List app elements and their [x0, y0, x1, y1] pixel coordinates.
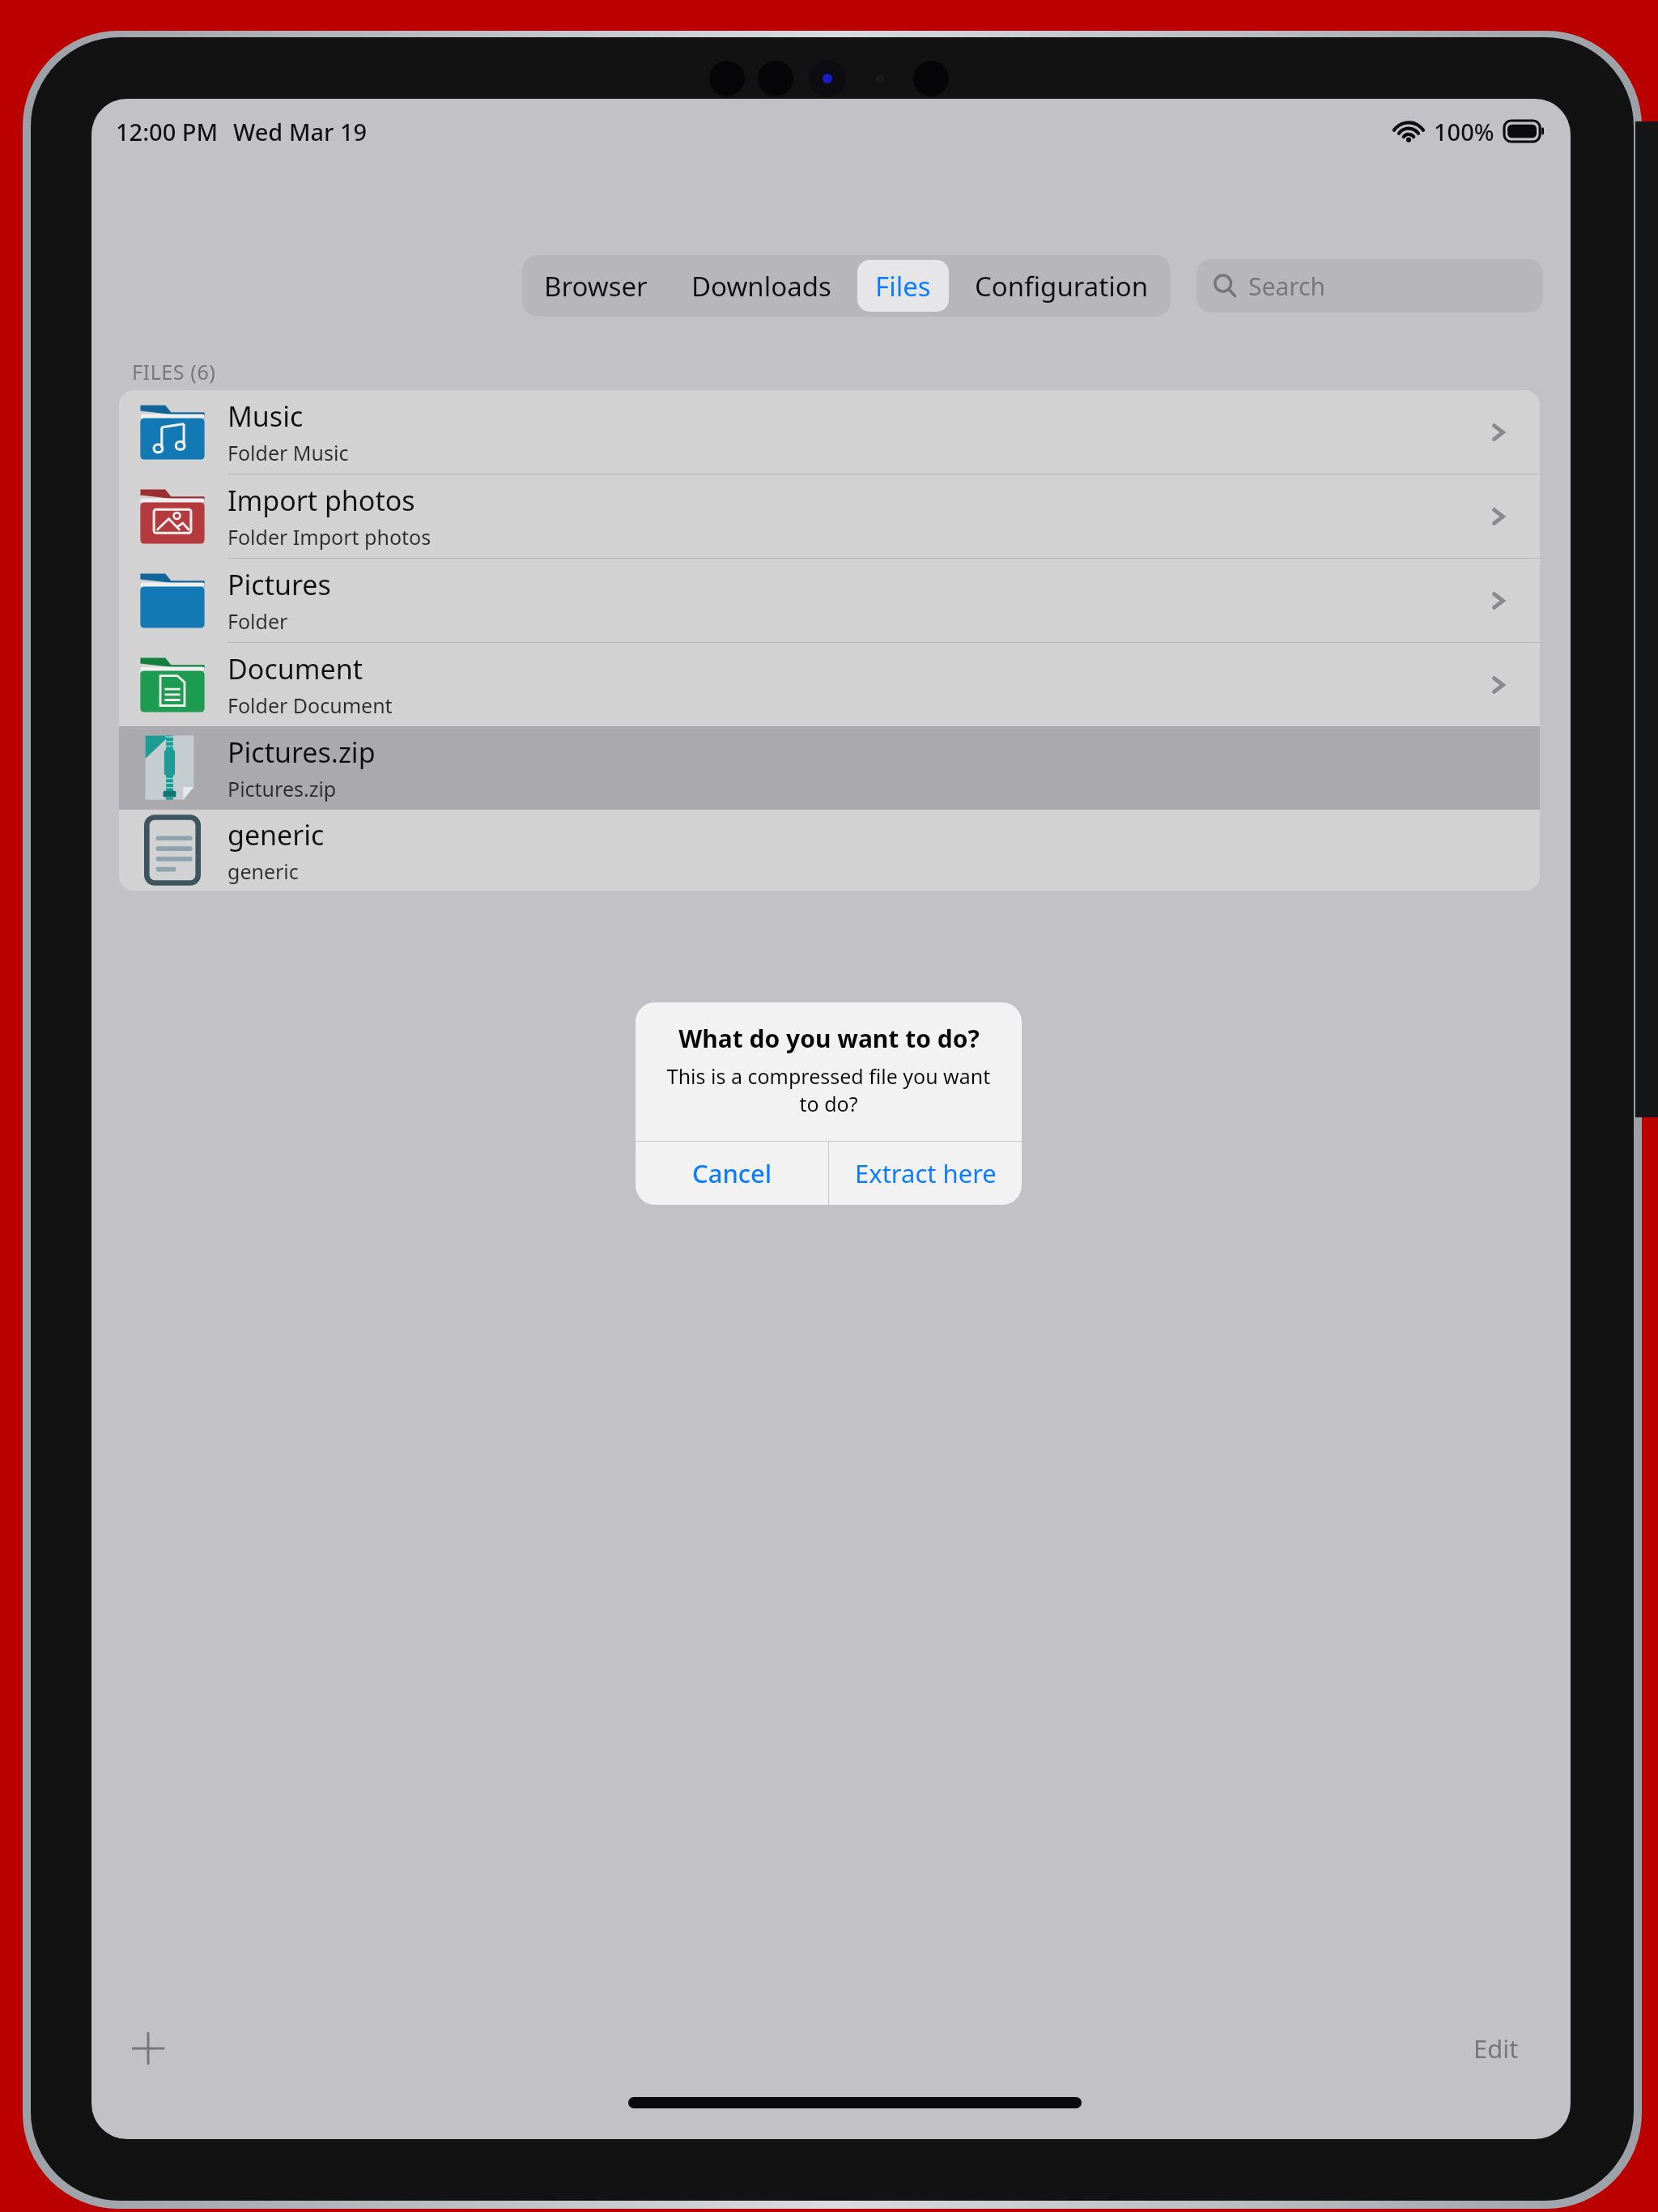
button[interactable]: Music	[119, 390, 1540, 474]
staticText: Files	[875, 268, 931, 304]
staticText: Folder	[227, 607, 288, 635]
button[interactable]: Pictures	[119, 559, 1540, 642]
staticText: This is a compressed file you want to do…	[657, 1062, 1001, 1117]
staticText: Pictures	[227, 566, 331, 603]
button[interactable]: Pictures.zip	[119, 726, 1540, 810]
staticText: Edit	[1473, 2031, 1519, 2065]
staticText: generic	[227, 857, 299, 885]
button[interactable]: Extract here	[829, 1142, 1022, 1205]
button[interactable]: Edit	[1443, 2008, 1549, 2089]
staticText: Pictures.zip	[227, 775, 337, 802]
button[interactable]: Document	[119, 643, 1540, 726]
staticText: Pictures.zip	[227, 734, 376, 771]
staticText: Music	[227, 398, 304, 435]
button[interactable]: Browser	[526, 260, 665, 312]
button[interactable]: Downloads	[674, 260, 849, 312]
staticText: Browser	[544, 268, 648, 304]
staticText: Folder Music	[227, 439, 349, 466]
staticText: Import photos	[227, 482, 415, 519]
staticText: Folder Import photos	[227, 523, 432, 551]
staticText: What do you want to do?	[678, 1022, 980, 1055]
staticText: Extract here	[855, 1156, 997, 1190]
button[interactable]: generic	[119, 810, 1540, 891]
button[interactable]: Configuration	[957, 260, 1167, 312]
button[interactable]: Search	[1197, 259, 1543, 313]
staticText: 12:00 PM	[116, 116, 219, 147]
staticText: Document	[227, 650, 363, 687]
button[interactable]: Cancel	[636, 1142, 828, 1205]
button[interactable]: Add	[108, 2008, 189, 2089]
button[interactable]: Import photos	[119, 474, 1540, 558]
staticText: FILES (6)	[132, 358, 216, 385]
staticText: Folder Document	[227, 691, 393, 719]
staticText: Search	[1248, 270, 1325, 303]
staticText: Downloads	[691, 268, 831, 304]
button[interactable]: Files	[857, 260, 949, 312]
staticText: Wed Mar 19	[233, 116, 368, 147]
staticText: Configuration	[975, 268, 1149, 304]
staticText: 100%	[1434, 116, 1494, 147]
staticText: generic	[227, 816, 325, 853]
staticText: Cancel	[692, 1156, 772, 1190]
